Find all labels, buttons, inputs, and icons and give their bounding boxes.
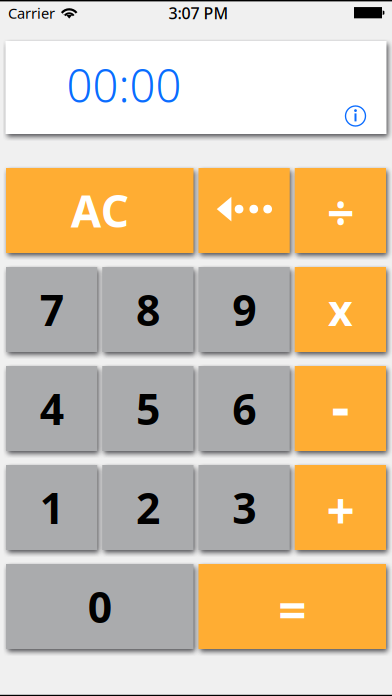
staticText: 5: [136, 380, 160, 437]
staticText: 3:07 PM: [168, 2, 228, 24]
button[interactable]: 7: [6, 267, 97, 352]
button[interactable]: 6: [198, 366, 290, 451]
button[interactable]: 3: [198, 465, 290, 550]
staticText: 6: [232, 380, 256, 437]
staticText: 00:00: [66, 55, 181, 115]
button[interactable]: Backspace: [198, 168, 290, 253]
staticText: +: [326, 477, 354, 543]
button[interactable]: 5: [102, 366, 193, 451]
staticText: ÷: [327, 180, 354, 243]
button[interactable]: Info: [345, 106, 386, 134]
staticText: 2: [136, 479, 160, 536]
button[interactable]: +: [295, 465, 386, 550]
button[interactable]: AC: [6, 168, 193, 253]
button[interactable]: -: [295, 366, 386, 451]
button[interactable]: ÷: [295, 168, 386, 253]
button[interactable]: =: [198, 564, 386, 649]
staticText: 9: [232, 281, 256, 338]
button[interactable]: 0: [6, 564, 193, 649]
staticText: 1: [40, 479, 64, 536]
staticText: 4: [40, 380, 64, 437]
button[interactable]: 1: [6, 465, 97, 550]
staticText: -: [331, 368, 349, 442]
staticText: 8: [136, 281, 160, 338]
button[interactable]: 4: [6, 366, 97, 451]
button[interactable]: 2: [102, 465, 193, 550]
staticText: 0: [88, 578, 112, 635]
staticText: Carrier: [8, 3, 55, 23]
staticText: 7: [40, 281, 64, 338]
button[interactable]: 8: [102, 267, 193, 352]
staticText: x: [328, 281, 353, 338]
staticText: AC: [71, 181, 129, 240]
staticText: 3: [232, 479, 256, 536]
button[interactable]: 9: [198, 267, 290, 352]
staticText: =: [278, 576, 306, 642]
button[interactable]: x: [295, 267, 386, 352]
